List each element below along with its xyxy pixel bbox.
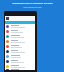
staticText: con talento di tutti <box>23 6 42 9</box>
button[interactable] <box>5 54 35 59</box>
button[interactable] <box>5 24 35 29</box>
button[interactable] <box>5 39 35 44</box>
button[interactable] <box>5 34 35 39</box>
button[interactable] <box>5 44 35 49</box>
button[interactable] <box>5 49 35 54</box>
button[interactable] <box>5 59 35 64</box>
staticText: Programmi per la Gestione dei Dati <box>12 1 53 4</box>
button[interactable] <box>5 29 35 34</box>
button[interactable] <box>5 69 35 70</box>
button[interactable] <box>5 64 35 69</box>
